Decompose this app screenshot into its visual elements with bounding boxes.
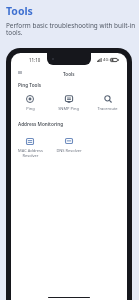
staticText: Ping Tools [18, 82, 42, 88]
staticText: Tools [63, 71, 75, 77]
button[interactable]: Open navigation menu [15, 68, 24, 77]
staticText: Perform basic troubleshooting with built… [6, 21, 138, 37]
button[interactable]: Ping [11, 94, 49, 111]
button[interactable]: Traceroute [88, 94, 127, 111]
staticText: DNS Resolver [56, 148, 82, 153]
staticText: 11:10 [29, 57, 41, 63]
staticText: Address Monitoring [18, 121, 64, 127]
button[interactable]: DNS Resolver [49, 136, 88, 153]
staticText: 4G [103, 57, 109, 63]
staticText: MAC Address Resolver [18, 148, 43, 158]
staticText: Tools [6, 4, 33, 18]
staticText: SNMP Ping [58, 106, 79, 111]
button[interactable]: SNMP Ping [49, 94, 88, 111]
button[interactable]: MAC Address Resolver [11, 136, 49, 158]
staticText: Traceroute [97, 106, 118, 111]
staticText: Ping [26, 106, 35, 111]
